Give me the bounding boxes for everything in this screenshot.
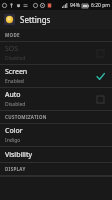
staticText: Settings (20, 14, 51, 25)
other: Toggle checked (94, 70, 107, 83)
button[interactable]: Screen (0, 65, 112, 87)
staticText: Screen (5, 67, 28, 77)
button[interactable]: Color (0, 124, 112, 146)
staticText: Visibility (5, 150, 32, 160)
staticText: Disabled (5, 55, 26, 62)
staticText: Disabled (5, 101, 26, 108)
staticText: Enabled (5, 78, 24, 85)
staticText: 94% (70, 2, 80, 9)
staticText: Auto (5, 90, 21, 100)
button[interactable]: SOS (0, 42, 112, 64)
button[interactable]: Visibility (0, 147, 112, 162)
staticText: SOS (5, 44, 19, 54)
staticText: DISPLAY (5, 166, 26, 172)
staticText: Color (5, 126, 23, 136)
button[interactable]: Settings (0, 10, 112, 29)
button[interactable]: Auto (0, 88, 112, 110)
staticText: 6:20 pm (91, 2, 110, 9)
staticText: MODE (5, 32, 20, 38)
staticText: Indigo (5, 137, 21, 144)
staticText: CUSTOMIZATION (5, 114, 47, 120)
other: Toggle unchecked (94, 93, 107, 106)
